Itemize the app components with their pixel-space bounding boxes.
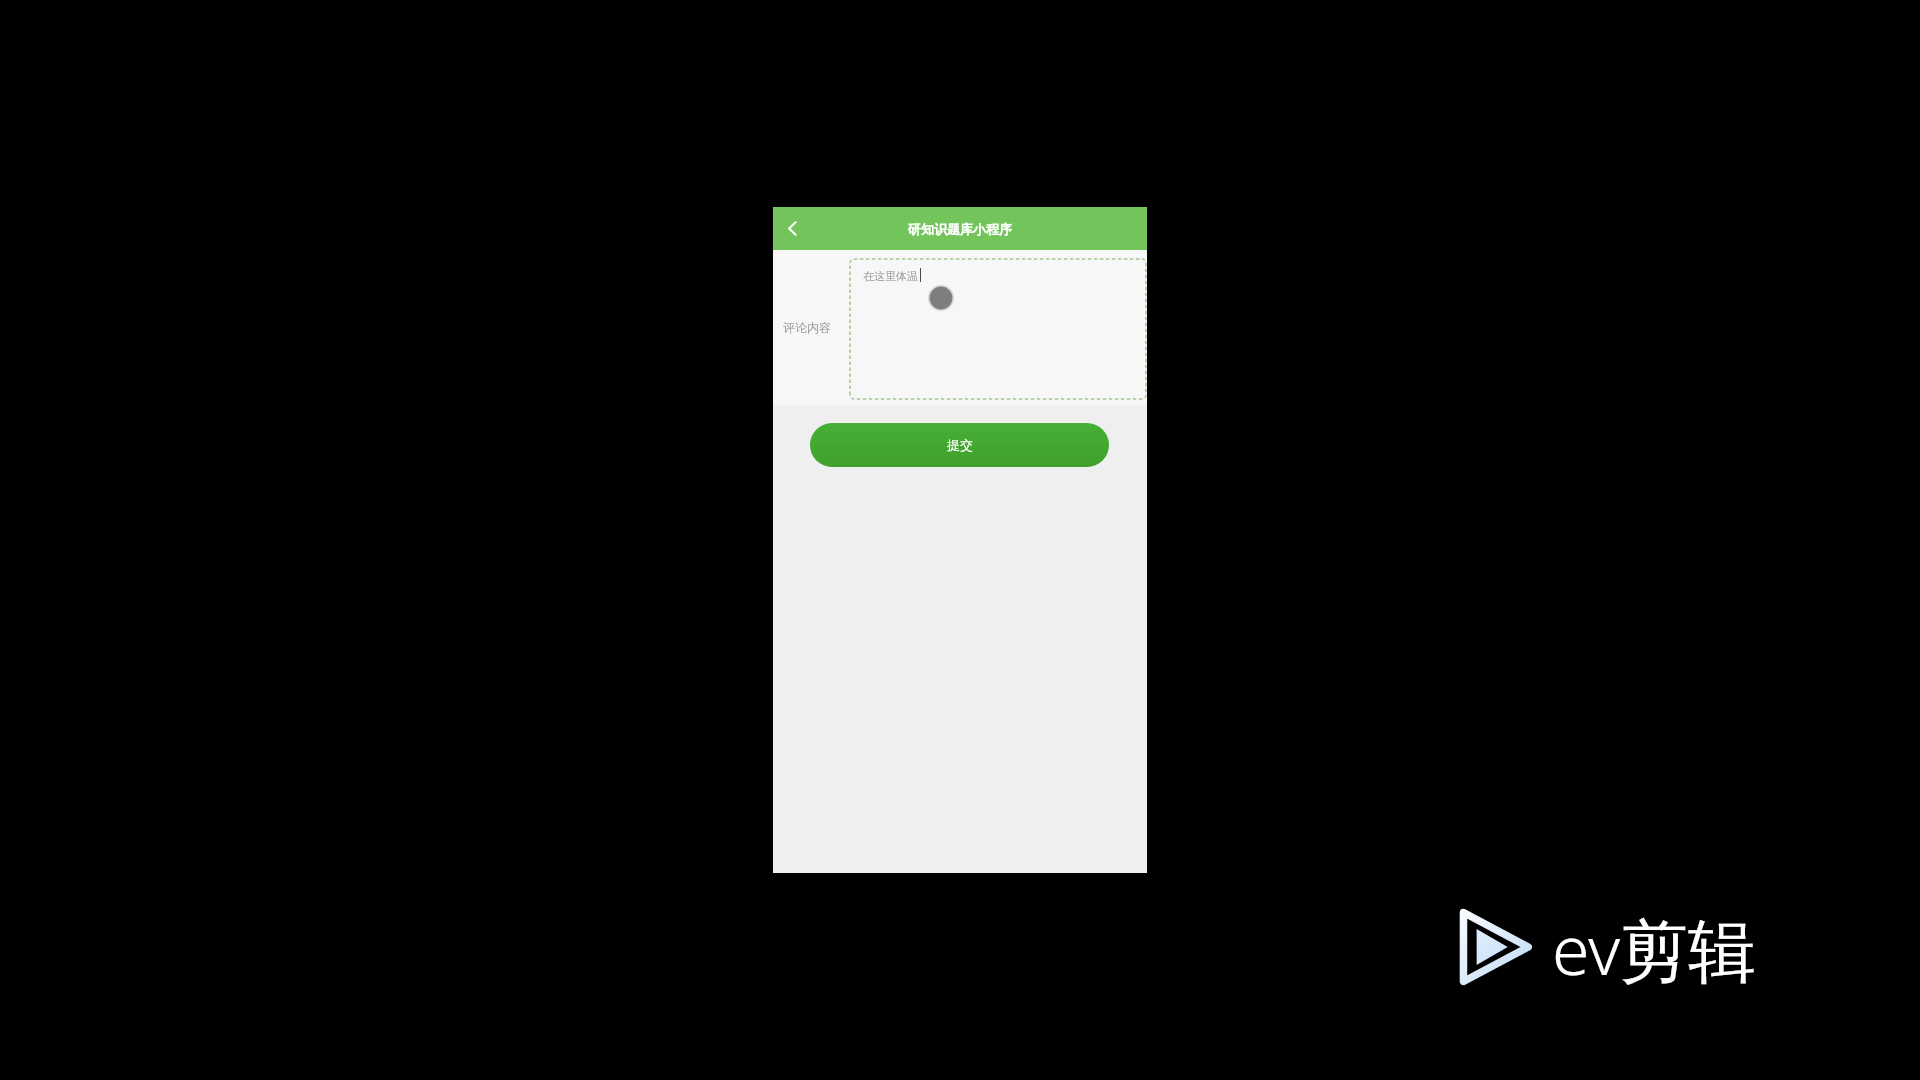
- staticText: 在这里体温: [863, 269, 918, 283]
- staticText: 提交: [947, 437, 973, 453]
- button[interactable]: Back: [773, 207, 811, 250]
- button[interactable]: 在这里体温: [850, 259, 1146, 399]
- staticText: 研知识题库小程序: [908, 221, 1012, 237]
- staticText: ev剪辑: [1552, 902, 1757, 995]
- staticText: 评论内容: [783, 320, 831, 335]
- button[interactable]: 提交: [810, 423, 1109, 467]
